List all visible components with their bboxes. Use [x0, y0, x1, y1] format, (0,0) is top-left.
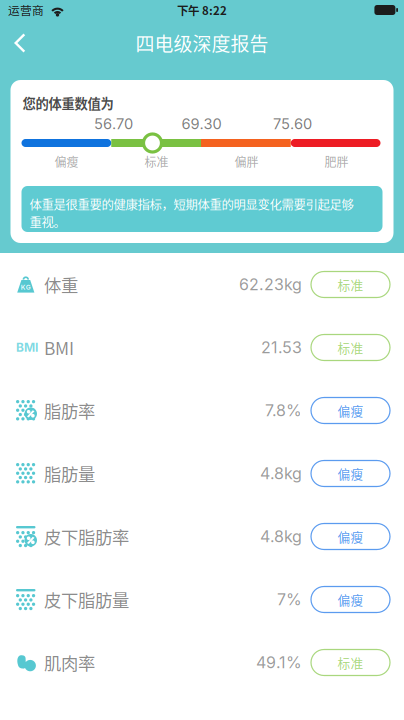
staticText: BMI — [44, 335, 74, 360]
staticText: 脂肪率 — [44, 398, 95, 423]
staticText: 标准 — [144, 153, 168, 170]
staticText: 标准 — [337, 338, 363, 357]
button[interactable]: KG — [0, 253, 404, 316]
staticText: 标准 — [337, 653, 363, 672]
staticText: 21.53 — [261, 338, 302, 357]
button[interactable]: 皮下脂肪率 — [0, 505, 404, 568]
staticText: 偏瘦 — [337, 527, 363, 546]
staticText: BMI — [16, 340, 38, 355]
staticText: 69.30 — [181, 115, 221, 133]
staticText: 62.23kg — [239, 275, 302, 294]
button[interactable]: 皮下脂肪量 — [0, 568, 404, 631]
staticText: 标准 — [337, 275, 363, 294]
staticText: 体重是很重要的健康指标，短期体重的明显变化需要引起足够重视。 — [29, 195, 353, 231]
staticText: 皮下脂肪率 — [44, 524, 129, 549]
staticText: 四电级深度报告 — [135, 29, 268, 57]
staticText: 4.8kg — [260, 527, 302, 546]
staticText: 56.70 — [94, 115, 133, 133]
staticText: 运营商 — [8, 1, 44, 18]
staticText: 下午 8:22 — [177, 2, 227, 18]
staticText: 7% — [277, 590, 302, 609]
staticText: 75.60 — [273, 115, 312, 133]
button[interactable]: 脂肪量 — [0, 442, 404, 505]
staticText: 您的体重数值为 — [22, 93, 113, 113]
staticText: 偏瘦 — [337, 401, 363, 420]
button[interactable]: 脂肪率 — [0, 379, 404, 442]
staticText: 4.8kg — [260, 464, 302, 483]
staticText: 体重 — [44, 272, 78, 297]
staticText: 偏瘦 — [337, 464, 363, 483]
button[interactable]: BMI — [0, 316, 404, 379]
staticText: 肥胖 — [324, 153, 348, 170]
staticText: 脂肪量 — [44, 461, 95, 486]
staticText: 偏胖 — [234, 153, 258, 170]
staticText: 皮下脂肪量 — [44, 587, 129, 612]
staticText: 偏瘦 — [54, 153, 78, 170]
button[interactable]: 肌肉率 — [0, 631, 404, 694]
staticText: 49.1% — [256, 653, 302, 672]
staticText: 7.8% — [265, 401, 302, 420]
staticText: 偏瘦 — [337, 590, 363, 609]
staticText: 肌肉率 — [44, 650, 95, 675]
staticText: KG — [21, 283, 31, 291]
button[interactable]: Back — [0, 20, 40, 66]
